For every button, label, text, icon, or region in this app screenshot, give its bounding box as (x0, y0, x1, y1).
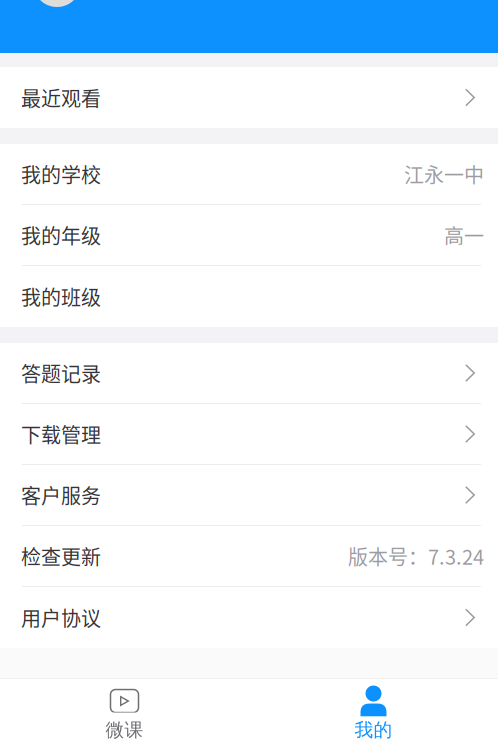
button[interactable]: 客户服务 (0, 465, 498, 526)
staticText: 检查更新 (21, 541, 101, 570)
button[interactable]: 我的学校 (0, 144, 498, 205)
button[interactable]: 检查更新 (0, 526, 498, 587)
staticText: 高一 (444, 220, 484, 249)
button[interactable]: 下载管理 (0, 404, 498, 465)
button[interactable]: 用户协议 (0, 587, 498, 648)
button[interactable]: 微课 (0, 679, 249, 741)
button[interactable]: 答题记录 (0, 343, 498, 404)
staticText: 用户协议 (21, 603, 101, 632)
staticText: 下载管理 (21, 419, 101, 448)
staticText: 我的 (354, 718, 392, 741)
staticText: 客户服务 (21, 480, 101, 509)
staticText: 答题记录 (21, 358, 101, 387)
staticText: 版本号：7.3.24 (348, 541, 484, 570)
staticText: 我的年级 (21, 220, 101, 249)
staticText: 最近观看 (21, 83, 101, 112)
staticText: 微课 (105, 718, 143, 741)
button[interactable]: 我的班级 (0, 266, 498, 327)
staticText: 江永一中 (404, 159, 484, 188)
button[interactable]: 最近观看 (0, 67, 498, 128)
button[interactable]: 我的年级 (0, 205, 498, 266)
staticText: 我的班级 (21, 282, 101, 311)
staticText: 我的学校 (21, 159, 101, 188)
button[interactable]: 我的 (249, 679, 498, 741)
